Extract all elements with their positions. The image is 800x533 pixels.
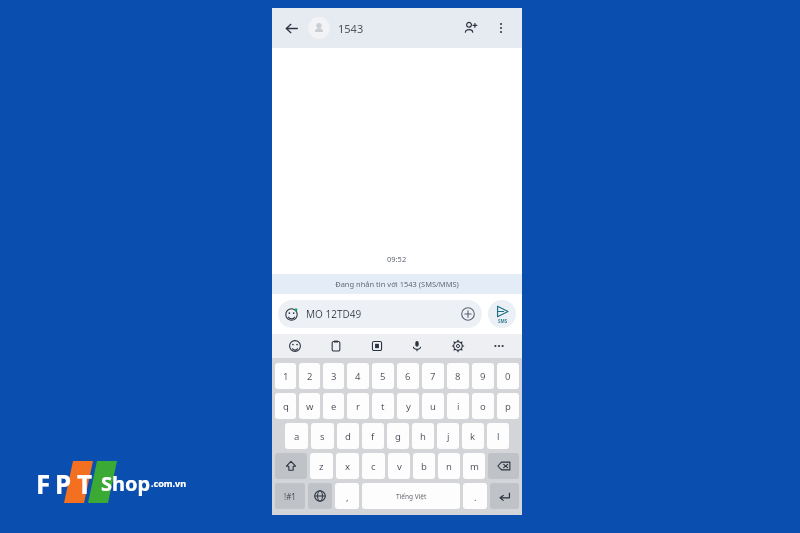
button[interactable]: Back [280,17,302,39]
button[interactable]: 7 [422,363,444,389]
staticText: 7 [430,370,436,383]
staticText: 3 [331,370,337,383]
staticText: w [306,400,314,413]
staticText: , [346,491,349,504]
button[interactable]: Shift [275,453,307,479]
button[interactable]: 4 [347,363,369,389]
button[interactable]: d [337,423,359,449]
button[interactable]: a [285,423,308,449]
button[interactable]: e [323,393,344,419]
staticText: c [371,460,376,473]
button[interactable]: 9 [472,363,494,389]
button[interactable]: , [335,483,359,509]
staticText: z [319,460,324,473]
staticText: p [505,400,511,413]
staticText: Tiếng Việt [396,492,427,501]
button[interactable]: g [387,423,409,449]
staticText: 6 [405,370,411,383]
staticText: k [470,430,476,443]
staticText: Shop [101,470,151,497]
staticText: o [480,400,486,413]
button[interactable]: u [422,393,444,419]
staticText: f [371,430,375,443]
staticText: !#1 [284,491,296,502]
button[interactable]: Switch language [308,483,332,509]
button[interactable]: 1 [275,363,296,389]
button[interactable]: 0 [497,363,519,389]
staticText: v [397,460,402,473]
button[interactable]: y [397,393,419,419]
staticText: e [331,400,337,413]
button[interactable]: t [372,393,394,419]
button[interactable]: Voice input [408,337,426,355]
staticText: 1543 [338,21,364,36]
button[interactable]: v [388,453,410,479]
staticText: n [446,460,452,473]
button[interactable]: f [362,423,384,449]
button[interactable]: Contact avatar [308,17,330,39]
button[interactable]: o [472,393,494,419]
button[interactable]: Backspace [488,453,519,479]
button[interactable]: !#1 [275,483,305,509]
button[interactable]: MO 12TD49 [278,300,482,328]
staticText: 09:52 [387,254,407,264]
button[interactable]: h [412,423,434,449]
staticText: 5 [380,370,386,383]
staticText: u [430,400,436,413]
staticText: d [345,430,351,443]
button[interactable]: b [413,453,435,479]
staticText: s [320,430,325,443]
staticText: a [294,430,300,443]
staticText: 2 [307,370,313,383]
staticText: SMS [498,318,508,324]
staticText: i [457,400,460,413]
staticText: 1 [283,370,289,383]
button[interactable]: k [462,423,484,449]
button[interactable]: Send SMS [488,300,516,328]
button[interactable]: l [487,423,509,449]
staticText: P [55,466,72,501]
button[interactable]: Add contact [458,15,484,41]
staticText: r [356,400,360,413]
staticText: 8 [455,370,461,383]
staticText: Đang nhắn tin với 1543 (SMS/MMS) [335,279,459,289]
button[interactable]: m [463,453,485,479]
staticText: 0 [505,370,511,383]
button[interactable]: r [347,393,369,419]
staticText: m [470,460,479,473]
button[interactable]: More options [488,15,514,41]
button[interactable]: z [310,453,333,479]
staticText: l [497,430,500,443]
button[interactable]: 5 [372,363,394,389]
button[interactable]: 3 [323,363,344,389]
button[interactable]: i [447,393,469,419]
button[interactable]: Settings [449,337,467,355]
button[interactable]: s [311,423,334,449]
button[interactable]: Emoji [286,337,304,355]
button[interactable]: Stickers [368,337,386,355]
button[interactable]: j [437,423,459,449]
button[interactable]: c [362,453,385,479]
button[interactable]: q [275,393,296,419]
staticText: . [474,491,477,504]
button[interactable]: x [336,453,359,479]
button[interactable]: p [497,393,519,419]
button[interactable]: Enter [490,483,519,509]
staticText: t [381,400,385,413]
button[interactable]: w [299,393,320,419]
staticText: g [395,430,401,443]
staticText: b [421,460,427,473]
staticText: T [77,466,93,501]
staticText: F [36,466,51,501]
button[interactable]: Clipboard [327,337,345,355]
staticText: MO 12TD49 [306,307,362,321]
button[interactable]: 8 [447,363,469,389]
button[interactable]: 6 [397,363,419,389]
button[interactable]: More [490,337,508,355]
button[interactable]: n [438,453,460,479]
button[interactable]: Tiếng Việt [362,483,460,509]
staticText: .com.vn [151,477,187,489]
staticText: j [447,430,450,443]
button[interactable]: . [463,483,487,509]
button[interactable]: 2 [299,363,320,389]
